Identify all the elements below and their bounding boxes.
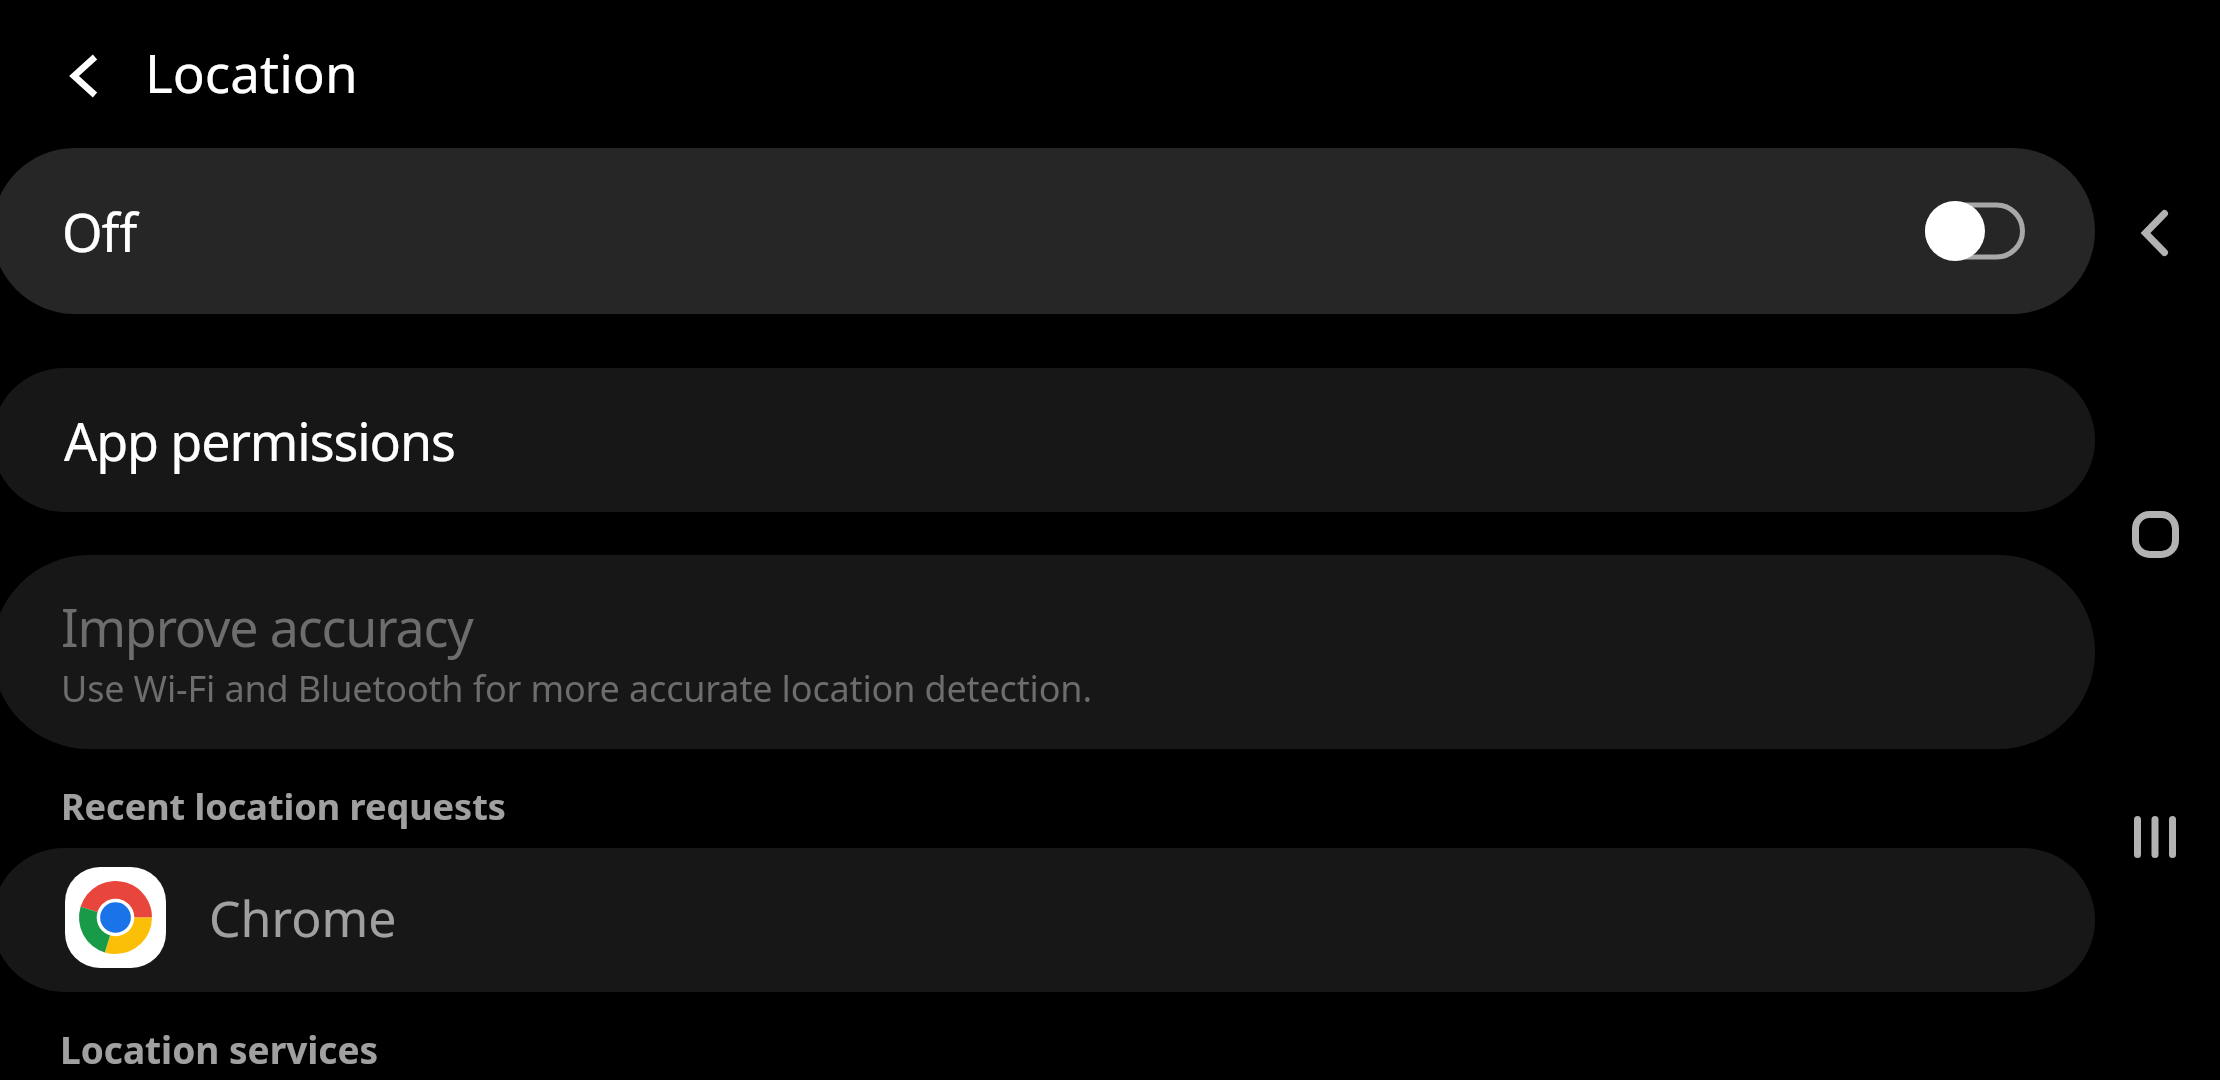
staticText: Chrome (209, 884, 397, 952)
staticText: Use Wi-Fi and Bluetooth for more accurat… (61, 664, 1092, 713)
button[interactable]: Chrome (0, 848, 2095, 992)
staticText: Off (62, 196, 137, 267)
staticText: Recent location requests (61, 782, 506, 831)
button[interactable]: Home (2109, 488, 2201, 580)
button[interactable]: App permissions (0, 368, 2095, 512)
staticText: Improve accuracy (61, 591, 473, 662)
button[interactable]: Back (2109, 187, 2201, 279)
staticText: Location services (60, 1024, 379, 1074)
staticText: App permissions (64, 405, 455, 476)
button[interactable]: Navigate up (44, 36, 124, 116)
button[interactable]: Improve accuracy (0, 555, 2095, 749)
button[interactable]: Location toggle (1925, 201, 2025, 261)
button[interactable]: Off (0, 148, 2095, 314)
staticText: Location (145, 36, 358, 108)
button[interactable]: Recents (2109, 791, 2201, 883)
